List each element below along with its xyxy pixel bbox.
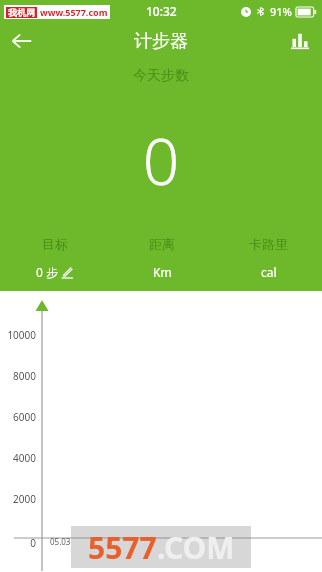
button[interactable]: 距离 <box>108 236 215 280</box>
staticText: www.5577.com <box>40 6 108 18</box>
staticText: 目标 <box>42 236 68 252</box>
button[interactable]: 目标 <box>0 236 108 280</box>
staticText: 距离 <box>149 236 175 252</box>
staticText: 05.03 <box>50 536 71 547</box>
staticText: .COM <box>157 527 235 568</box>
staticText: 2000 <box>0 492 36 506</box>
staticText: 4000 <box>0 451 36 465</box>
staticText: 5577 <box>88 527 157 568</box>
staticText: 计步器 <box>134 30 188 53</box>
staticText: 0 步 <box>36 264 58 280</box>
staticText: cal <box>261 264 277 280</box>
staticText: 10:32 <box>146 3 177 19</box>
staticText: 8000 <box>0 369 36 383</box>
staticText: 卡路里 <box>249 236 288 252</box>
staticText: 我机网 <box>8 7 35 18</box>
staticText: 0 <box>0 536 36 550</box>
staticText: Km <box>153 264 172 280</box>
button[interactable]: 卡路里 <box>215 236 322 280</box>
staticText: 91% <box>270 4 292 19</box>
staticText: 0 <box>0 117 322 204</box>
button[interactable]: Statistics <box>278 22 322 60</box>
staticText: 今天步数 <box>0 67 322 85</box>
staticText: 10000 <box>0 328 36 342</box>
staticText: 6000 <box>0 410 36 424</box>
button[interactable]: Back <box>0 22 44 60</box>
